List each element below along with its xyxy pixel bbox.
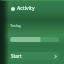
other: Status bbox=[11, 7, 15, 11]
staticText: Start bbox=[11, 53, 22, 59]
button[interactable]: Progress bbox=[10, 37, 59, 42]
staticText: Activity bbox=[17, 5, 35, 12]
button[interactable]: Start bbox=[10, 52, 59, 60]
button[interactable]: Open bbox=[53, 54, 58, 59]
staticText: Today bbox=[10, 23, 22, 28]
button[interactable]: Status bbox=[10, 4, 59, 13]
